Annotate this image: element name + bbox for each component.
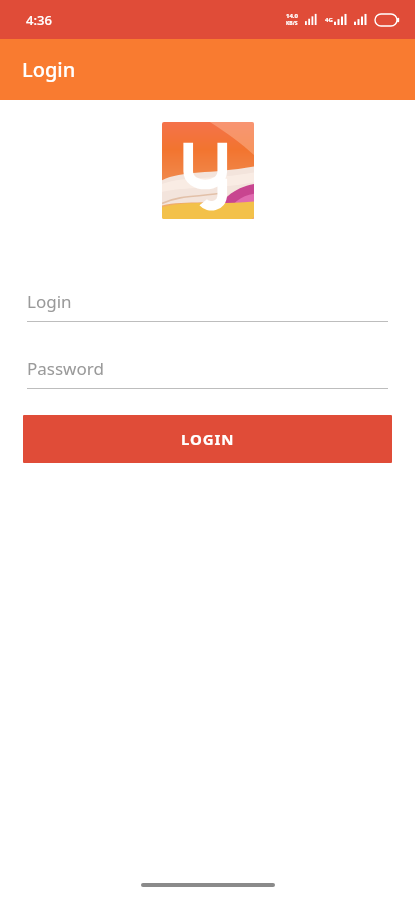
staticText: KB/S — [286, 20, 298, 27]
staticText: Login — [27, 290, 72, 313]
button[interactable]: LOGIN — [23, 415, 392, 463]
staticText: Login — [22, 56, 76, 83]
staticText: LOGIN — [181, 429, 235, 449]
staticText: 4G — [325, 16, 333, 24]
staticText: 4:36 — [26, 11, 52, 29]
button[interactable]: Password — [27, 357, 388, 389]
staticText: 14.0 — [286, 12, 298, 20]
staticText: Password — [27, 357, 104, 380]
button[interactable]: Login — [27, 290, 388, 322]
